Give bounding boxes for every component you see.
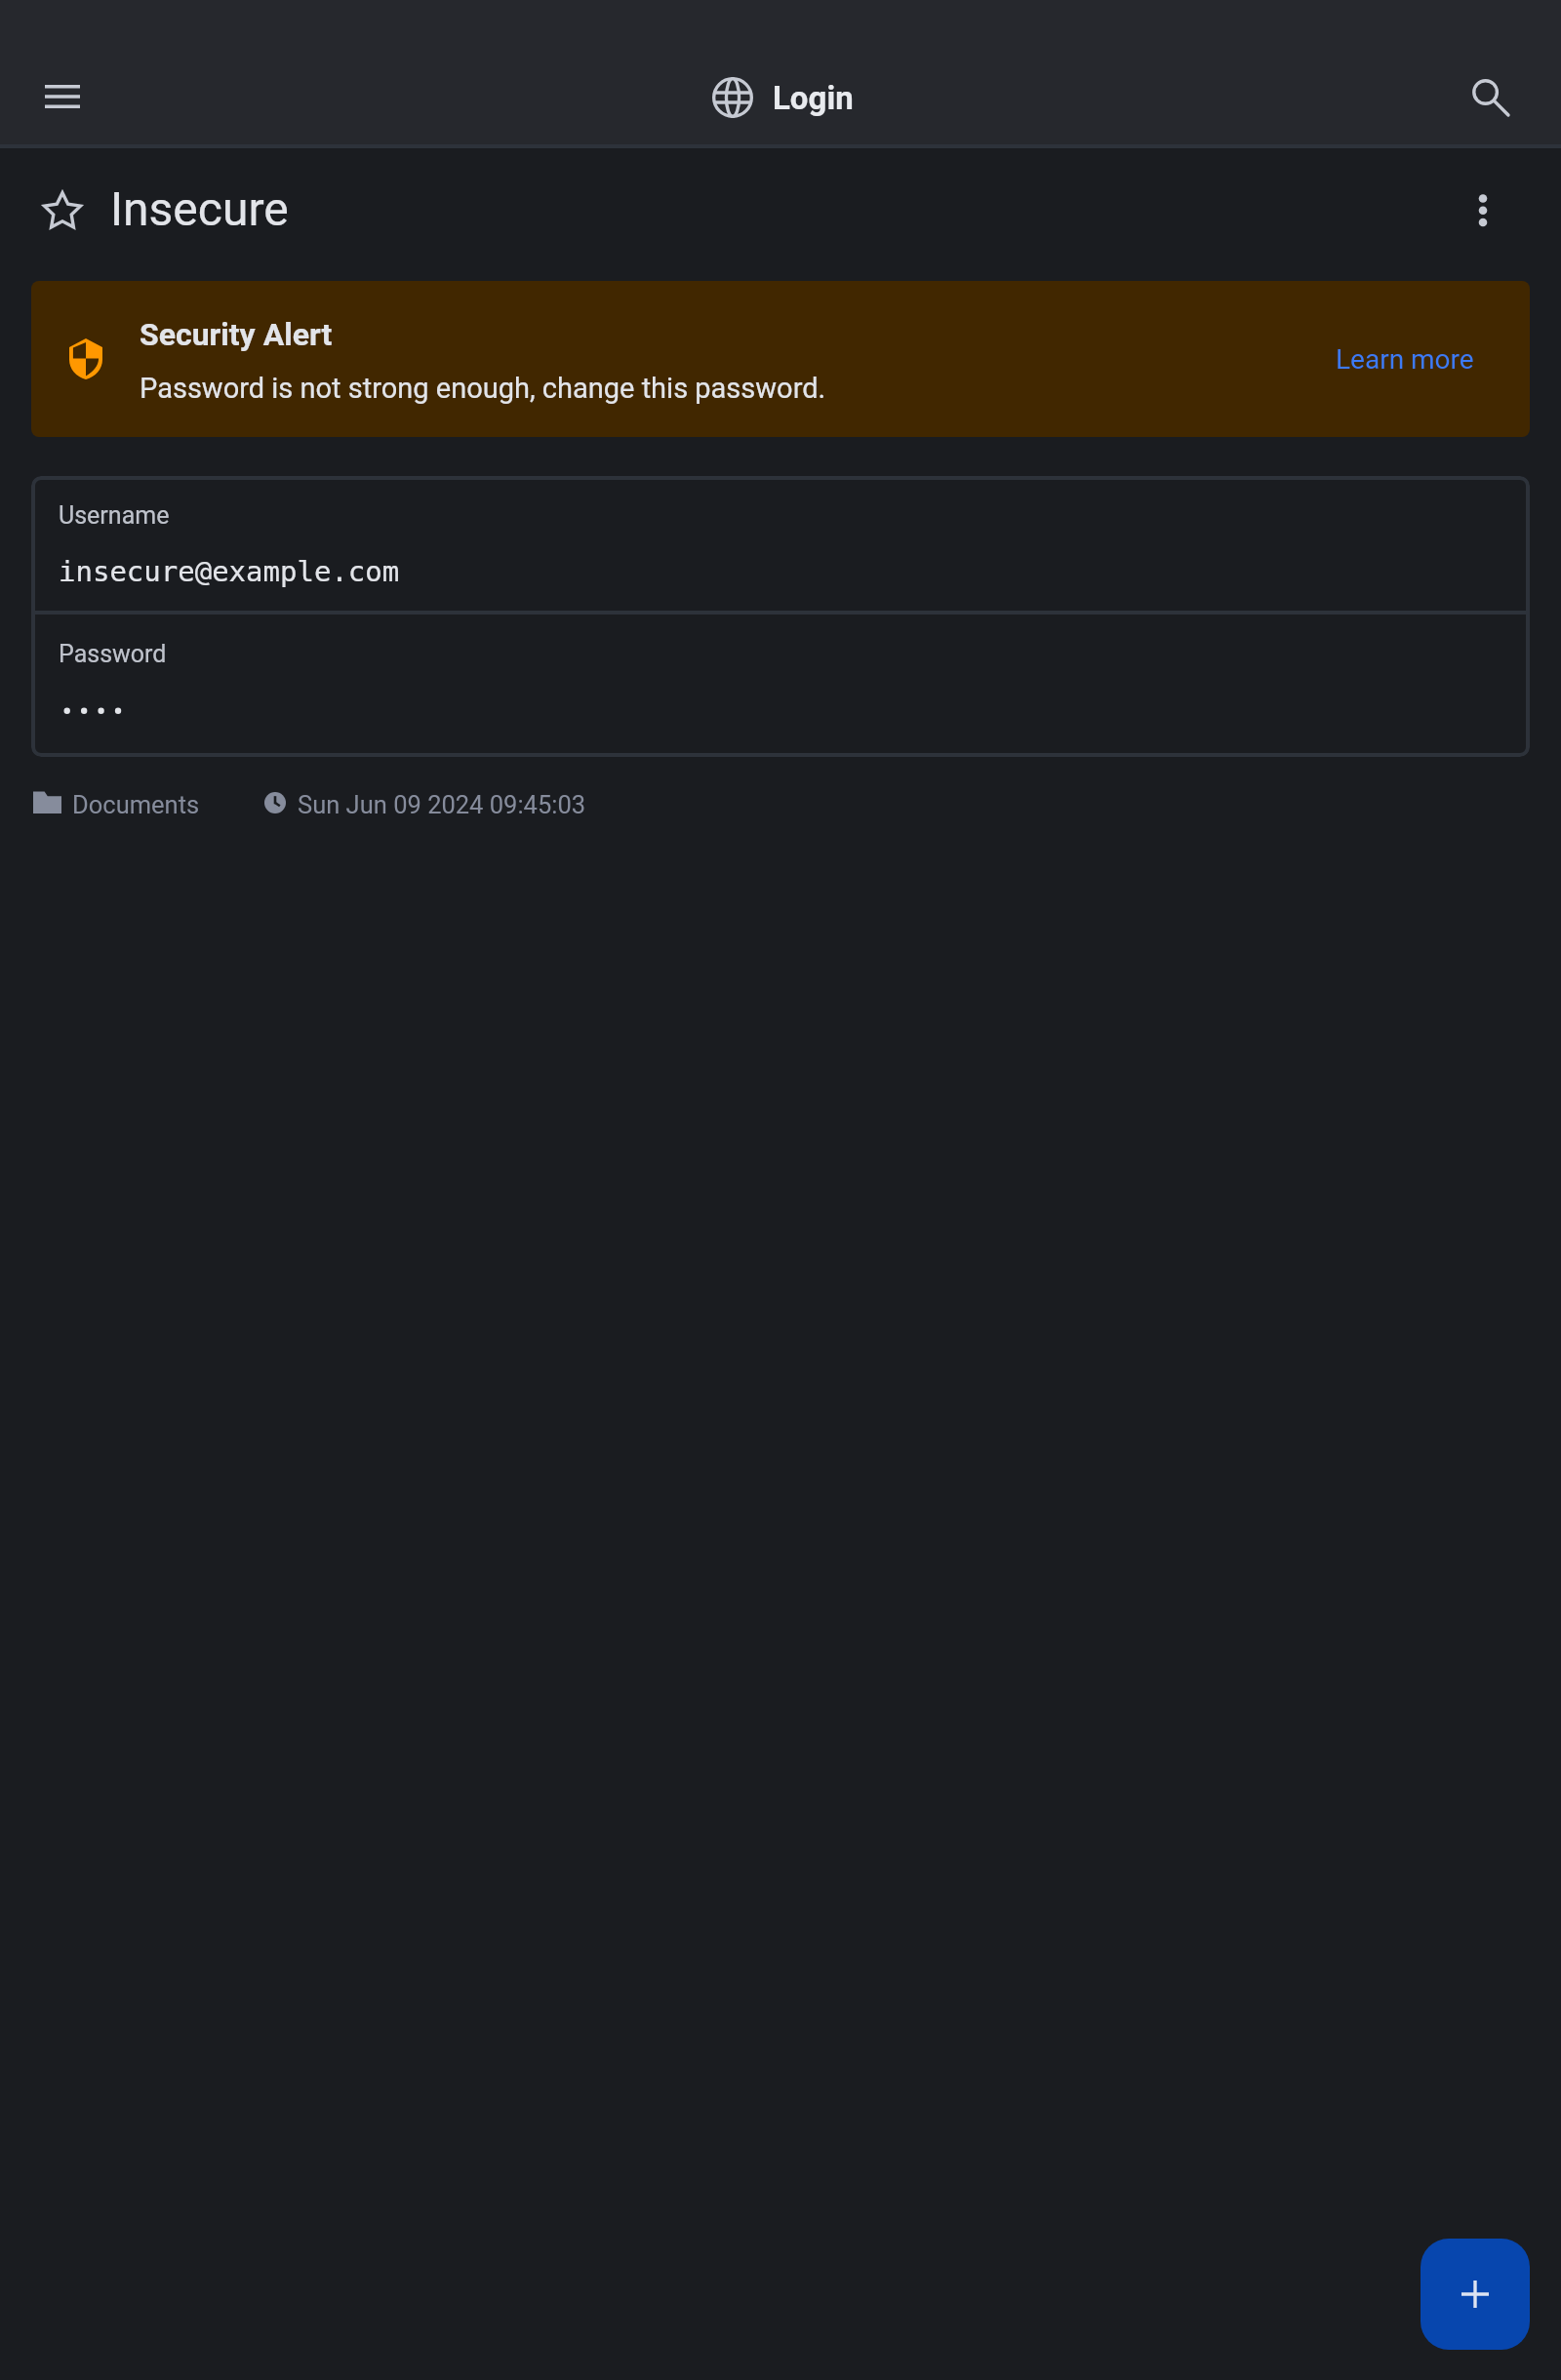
staticText: Documents xyxy=(72,790,200,819)
staticText: Insecure xyxy=(110,181,289,236)
staticText: Password is not strong enough, change th… xyxy=(140,372,826,405)
staticText: insecure@example.com xyxy=(59,555,400,588)
staticText: Password xyxy=(59,640,167,668)
button[interactable]: Password xyxy=(31,615,1530,749)
button[interactable]: Learn more xyxy=(1326,332,1484,387)
button[interactable]: Search xyxy=(1438,45,1532,139)
staticText: Security Alert xyxy=(140,316,333,353)
staticText: Login xyxy=(773,79,854,117)
button[interactable]: Add new item xyxy=(1421,2239,1530,2350)
button[interactable]: Open navigation menu xyxy=(16,25,109,119)
button[interactable]: Username xyxy=(31,476,1530,611)
staticText: Learn more xyxy=(1336,343,1474,376)
staticText: Sun Jun 09 2024 09:45:03 xyxy=(298,790,586,819)
button[interactable]: More options xyxy=(1436,151,1530,270)
staticText: Username xyxy=(59,501,170,530)
button[interactable]: Add to favorites xyxy=(0,151,127,270)
